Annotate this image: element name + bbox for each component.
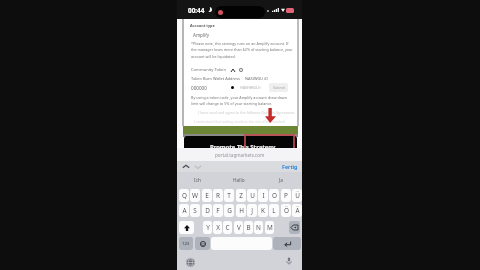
staticText: Account type <box>190 23 215 28</box>
staticText: Q <box>182 191 187 200</box>
staticText: C <box>225 223 230 232</box>
staticText: N <box>256 223 261 232</box>
button[interactable]: H <box>236 204 246 217</box>
button[interactable]: D <box>202 204 212 217</box>
staticText: P <box>284 191 288 200</box>
button[interactable]: Ja <box>260 174 302 186</box>
button[interactable]: U <box>247 189 257 202</box>
button[interactable]: V <box>234 221 243 234</box>
button[interactable]: W <box>190 189 200 202</box>
staticText: Ü <box>295 191 300 200</box>
staticText: G <box>227 206 232 215</box>
button[interactable]: Ä <box>292 204 302 217</box>
staticText: J <box>251 206 253 215</box>
staticText: E <box>205 191 209 200</box>
button[interactable]: B <box>244 221 253 234</box>
button[interactable]: O <box>269 189 279 202</box>
button[interactable]: Ü <box>292 189 302 202</box>
button[interactable]: S <box>190 204 200 217</box>
staticText: Ä <box>295 206 300 215</box>
staticText: B <box>246 223 251 232</box>
button[interactable]: X <box>213 221 222 234</box>
staticText: S <box>193 206 197 215</box>
staticText: Fertig <box>282 163 298 170</box>
staticText: 00:44 <box>188 6 205 15</box>
button[interactable]: E <box>202 189 212 202</box>
staticText: 000000 <box>191 85 207 91</box>
button[interactable]: R <box>213 189 223 202</box>
button[interactable]: J <box>247 204 257 217</box>
button[interactable]: M <box>265 221 274 234</box>
staticText: Amplify <box>193 32 210 38</box>
button[interactable]: N <box>254 221 263 234</box>
button[interactable]: 123 <box>179 237 193 250</box>
staticText: Token Burn Wallet Address <box>191 76 240 81</box>
button[interactable]: C <box>223 221 232 234</box>
button[interactable]: P <box>281 189 291 202</box>
button[interactable]: Ich <box>177 174 218 186</box>
button[interactable]: K <box>258 204 268 217</box>
staticText: *Please note, this strategy runs on an A… <box>191 41 293 60</box>
staticText: Z <box>239 191 243 200</box>
button[interactable]: Shift <box>179 221 194 234</box>
staticText: U <box>250 191 255 200</box>
staticText: I understand that trading results in the… <box>194 119 286 123</box>
staticText: By using a token code, your Amplify acco… <box>191 95 287 107</box>
button[interactable]: F <box>213 204 223 217</box>
staticText: A <box>182 206 187 215</box>
staticText: Submit <box>273 85 285 90</box>
staticText: D <box>205 206 210 215</box>
button[interactable]: Submit <box>269 83 288 92</box>
button[interactable]: A <box>179 204 189 217</box>
button[interactable]: portal.tagmarkets.com <box>215 152 265 158</box>
button[interactable]: I <box>258 189 268 202</box>
button[interactable]: Ö <box>281 204 291 217</box>
button[interactable]: Next field <box>193 162 203 172</box>
button[interactable]: Change keyboard <box>186 258 195 267</box>
button[interactable]: G <box>224 204 234 217</box>
staticText: W <box>192 191 198 200</box>
button[interactable]: Y <box>203 221 212 234</box>
button[interactable]: Hallo <box>218 174 260 186</box>
staticText: T <box>227 191 231 200</box>
button[interactable]: Backspace <box>289 221 300 234</box>
staticText: Ich <box>194 177 201 184</box>
button[interactable]: Emoji <box>195 237 210 250</box>
staticText: I <box>262 191 265 200</box>
staticText: NASIWGU iD <box>245 76 269 81</box>
staticText: Hallo <box>233 177 245 184</box>
staticText: Y <box>206 223 210 232</box>
staticText: O <box>272 191 277 200</box>
staticText: Promote This Strategy <box>210 143 276 149</box>
staticText: H <box>239 206 244 215</box>
staticText: HASHWGU i <box>240 85 261 90</box>
staticText: X <box>216 223 220 232</box>
button[interactable]: Dictation <box>285 257 293 265</box>
staticText: F <box>216 206 220 215</box>
button[interactable]: T <box>224 189 234 202</box>
button[interactable]: Z <box>236 189 246 202</box>
staticText: M <box>267 223 273 232</box>
button[interactable]: L <box>269 204 279 217</box>
staticText: L <box>272 206 276 215</box>
staticText: Community Token <box>191 67 226 73</box>
staticText: I have read and agree to the follower Ou… <box>198 110 295 115</box>
staticText: R <box>216 191 220 200</box>
staticText: 123 <box>182 241 190 247</box>
button[interactable]: Previous field <box>181 162 191 172</box>
button[interactable]: Return <box>273 237 301 250</box>
button[interactable]: Q <box>179 189 189 202</box>
staticText: V <box>237 223 241 232</box>
staticText: Ö <box>284 206 289 215</box>
staticText: K <box>261 206 265 215</box>
staticText: Ja <box>279 177 284 184</box>
button[interactable]: Fertig <box>282 163 298 170</box>
